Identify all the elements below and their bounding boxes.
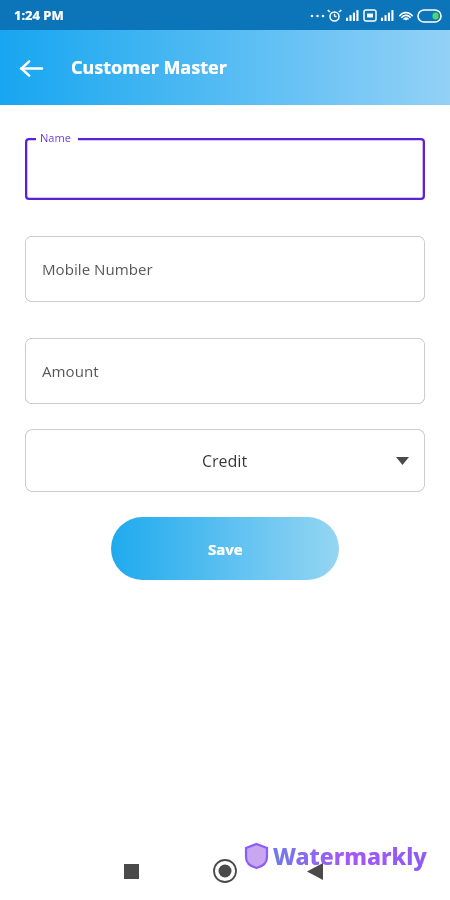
button[interactable]: Home (203, 849, 247, 893)
button[interactable]: Credit (25, 429, 425, 492)
button[interactable]: Back (11, 48, 51, 88)
button[interactable]: Mobile Number (25, 236, 425, 302)
button[interactable]: Amount (25, 338, 425, 404)
staticText: Credit (202, 450, 248, 472)
staticText: Mobile Number (42, 259, 153, 279)
button[interactable]: Save (111, 517, 339, 580)
staticText: 1:24 PM (14, 6, 64, 24)
staticText: Save (208, 539, 243, 559)
staticText: Customer Master (71, 55, 227, 80)
button[interactable] (25, 138, 425, 200)
staticText: Amount (42, 361, 99, 381)
button[interactable]: Back (295, 851, 335, 891)
button[interactable]: Recents (111, 851, 151, 891)
staticText: Name (40, 130, 72, 145)
staticText: Watermarkly (273, 840, 427, 871)
